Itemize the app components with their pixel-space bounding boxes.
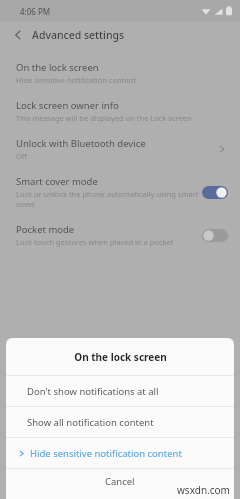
button[interactable]: Unlock with Bluetooth device [0,130,240,168]
staticText: On the lock screen [16,61,99,74]
button[interactable]: Show all notification content [6,407,234,437]
staticText: Cancel [105,475,135,488]
staticText: 4:06 PM [20,6,51,17]
button[interactable]: Smart cover mode [0,168,240,216]
staticText: Show all notification content [27,416,154,429]
staticText: Lock touch gestures when placed in a poc… [16,237,174,247]
staticText: Hide sensitive notification content [16,75,136,85]
button[interactable]: Lock screen owner info [0,92,240,130]
button[interactable]: Cancel [6,469,234,499]
staticText: Advanced settings [32,28,125,42]
staticText: Lock or unlock the phone automatically u… [16,189,200,209]
staticText: On the lock screen [74,350,167,364]
staticText: Off [16,151,28,161]
staticText: Hide sensitive notification content [30,447,182,460]
button[interactable]: Hide sensitive notification content [6,438,234,468]
staticText: This message will be displayed on the Lo… [16,113,192,123]
staticText: Smart cover mode [16,175,98,188]
staticText: Pocket mode [16,223,75,236]
button[interactable]: Pocket mode [0,216,240,254]
staticText: Lock screen owner info [16,99,119,112]
button[interactable]: Back [8,25,28,45]
button[interactable]: On the lock screen [0,54,240,92]
button[interactable]: Switch off [200,225,230,245]
staticText: wsxdn.com [177,483,230,497]
button[interactable]: Don't show notifications at all [6,376,234,406]
staticText: Don't show notifications at all [27,385,159,398]
button[interactable]: Switch on [200,182,230,202]
staticText: Unlock with Bluetooth device [16,137,146,150]
